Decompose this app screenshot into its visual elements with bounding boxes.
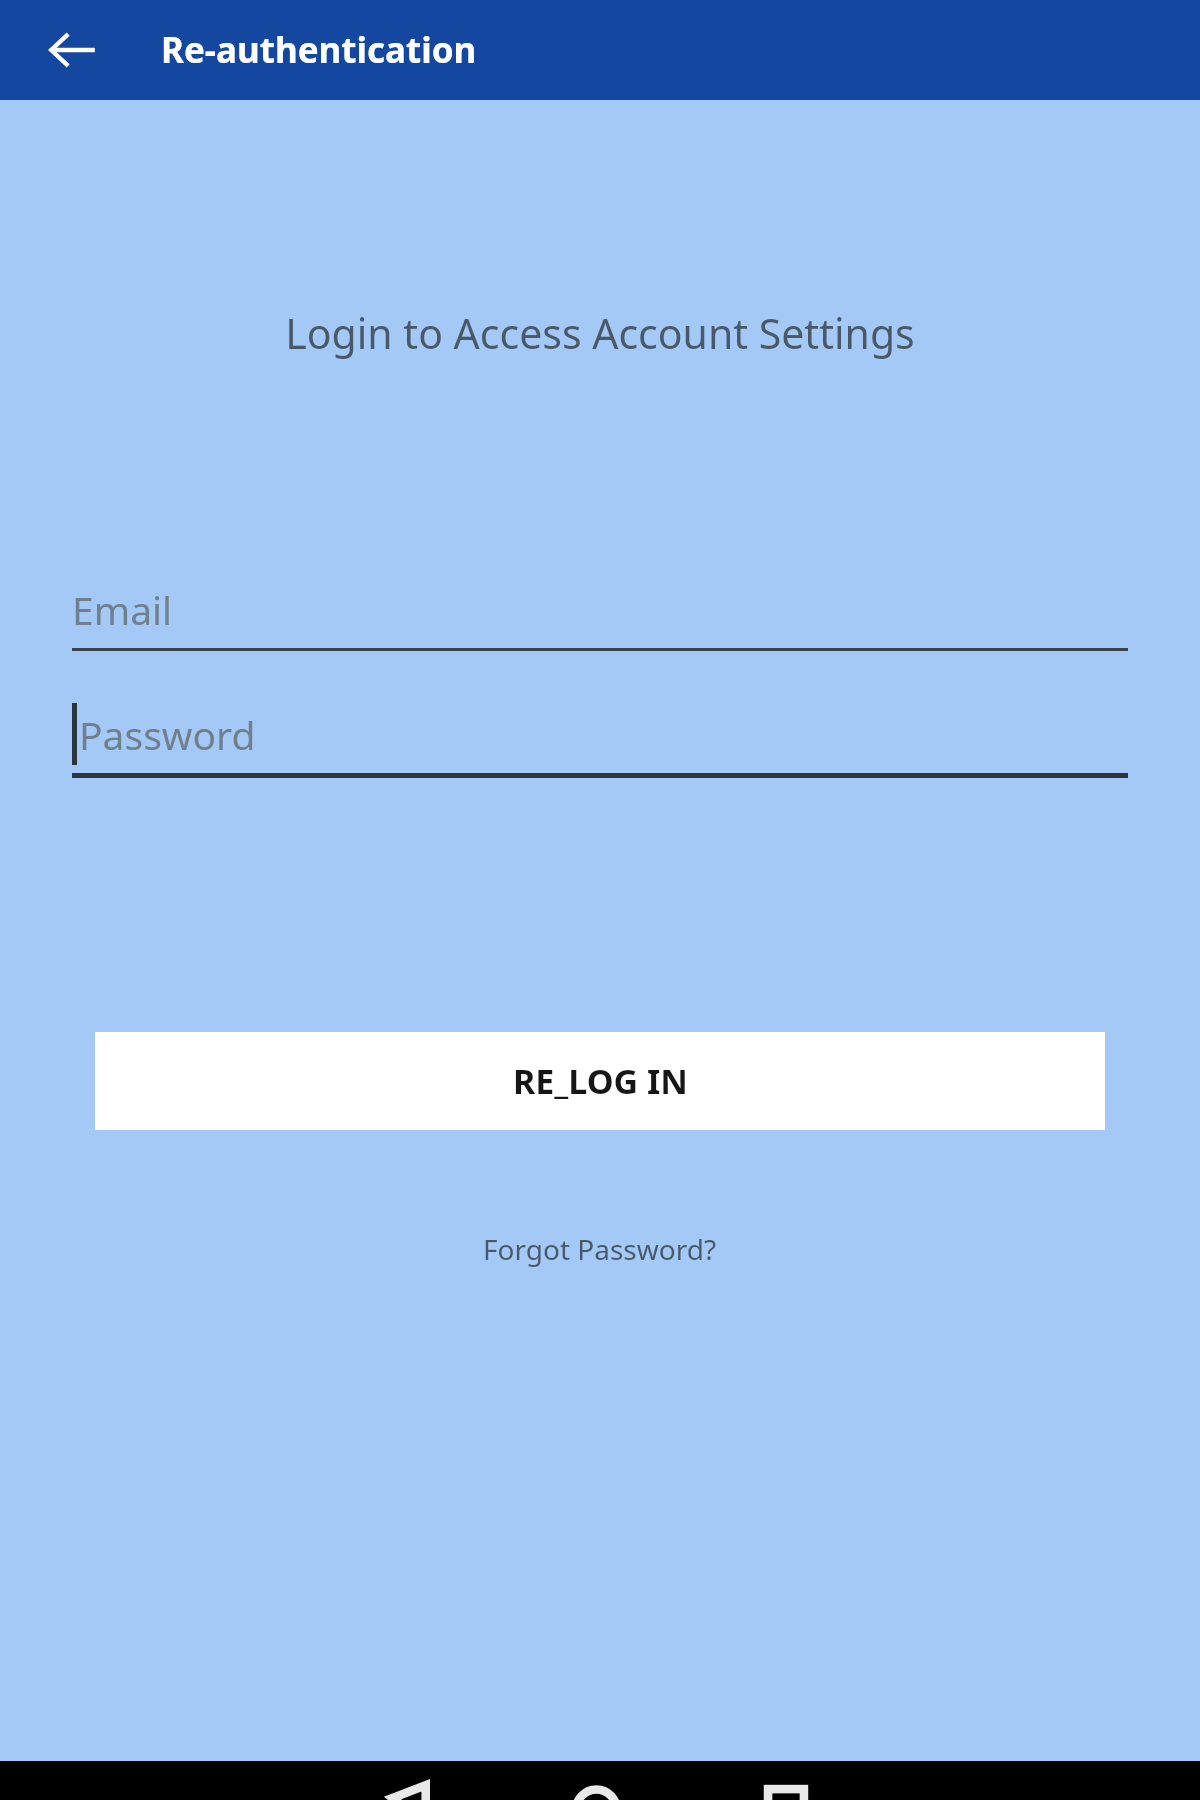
staticText: Forgot Password?	[483, 1230, 717, 1268]
staticText: Re-authentication	[161, 26, 477, 74]
button[interactable]: RE_LOG IN	[95, 1032, 1105, 1130]
staticText: Password	[79, 708, 256, 761]
staticText: Login to Access Account Settings	[0, 305, 1200, 361]
button[interactable]: Forgot Password?	[467, 1222, 733, 1276]
staticText: RE_LOG IN	[513, 1058, 688, 1104]
button[interactable]: Email	[72, 570, 1128, 651]
button[interactable]: Back	[23, 7, 122, 93]
staticText: Email	[72, 583, 173, 636]
button[interactable]: Password	[72, 695, 1128, 778]
